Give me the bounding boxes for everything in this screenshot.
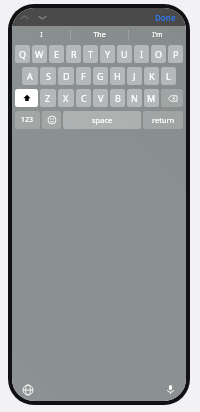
button[interactable]: B xyxy=(110,89,125,107)
button[interactable]: return xyxy=(143,111,183,129)
staticText: J xyxy=(133,70,136,82)
button[interactable]: Next field xyxy=(36,11,48,23)
button[interactable]: Z xyxy=(40,89,56,107)
button[interactable]: Y xyxy=(100,45,115,63)
staticText: W xyxy=(35,48,44,60)
button[interactable]: W xyxy=(32,45,47,63)
staticText: I xyxy=(40,30,43,40)
button[interactable]: U xyxy=(117,45,132,63)
staticText: return xyxy=(152,115,175,125)
staticText: Done xyxy=(155,12,176,23)
button[interactable]: E xyxy=(49,45,64,63)
staticText: H xyxy=(114,70,121,82)
staticText: X xyxy=(63,92,69,104)
button[interactable]: G xyxy=(93,67,108,85)
button[interactable]: A xyxy=(22,67,38,85)
button[interactable]: D xyxy=(58,67,74,85)
staticText: I xyxy=(140,48,144,60)
staticText: O xyxy=(155,48,163,60)
staticText: M xyxy=(147,92,156,104)
staticText: Y xyxy=(105,48,111,60)
button[interactable]: T xyxy=(83,45,98,63)
button[interactable]: The xyxy=(71,26,128,43)
staticText: C xyxy=(81,92,87,104)
staticText: E xyxy=(54,48,60,60)
staticText: B xyxy=(115,92,121,104)
staticText: N xyxy=(131,92,138,104)
staticText: G xyxy=(97,70,104,82)
button[interactable]: K xyxy=(144,67,159,85)
button[interactable]: Q xyxy=(15,45,30,63)
button[interactable]: Shift xyxy=(15,89,38,107)
staticText: 123 xyxy=(21,115,34,125)
button[interactable]: S xyxy=(40,67,56,85)
staticText: F xyxy=(81,70,86,82)
staticText: I'm xyxy=(152,30,163,40)
staticText: D xyxy=(63,70,70,82)
staticText: Z xyxy=(45,92,51,104)
staticText: T xyxy=(88,48,94,60)
staticText: U xyxy=(121,48,128,60)
staticText: P xyxy=(173,48,179,60)
button[interactable]: Dictate xyxy=(164,383,177,396)
button[interactable]: J xyxy=(127,67,142,85)
staticText: R xyxy=(71,48,77,60)
button[interactable]: X xyxy=(58,89,74,107)
button[interactable]: Emoji xyxy=(42,111,61,129)
button[interactable]: I xyxy=(134,45,149,63)
button[interactable]: space xyxy=(63,111,141,129)
staticText: The xyxy=(93,30,106,40)
button[interactable]: H xyxy=(110,67,125,85)
button[interactable]: L xyxy=(161,67,176,85)
button[interactable]: V xyxy=(93,89,108,107)
button[interactable]: O xyxy=(151,45,166,63)
button[interactable]: Done xyxy=(151,10,180,25)
button[interactable]: N xyxy=(127,89,142,107)
button[interactable]: F xyxy=(76,67,91,85)
staticText: V xyxy=(98,92,104,104)
button[interactable]: I'm xyxy=(129,26,186,43)
staticText: space xyxy=(92,115,113,125)
staticText: Q xyxy=(19,48,27,60)
button[interactable]: Backspace xyxy=(161,89,183,107)
button[interactable]: Previous field xyxy=(18,11,30,23)
button[interactable]: C xyxy=(76,89,91,107)
button[interactable]: M xyxy=(144,89,159,107)
button[interactable]: P xyxy=(168,45,183,63)
button[interactable]: I xyxy=(12,26,70,43)
staticText: A xyxy=(27,70,33,82)
button[interactable]: R xyxy=(66,45,81,63)
staticText: L xyxy=(166,70,171,82)
button[interactable]: Change keyboard xyxy=(21,383,34,396)
button[interactable]: 123 xyxy=(15,111,40,129)
staticText: S xyxy=(46,70,51,82)
staticText: K xyxy=(149,70,155,82)
